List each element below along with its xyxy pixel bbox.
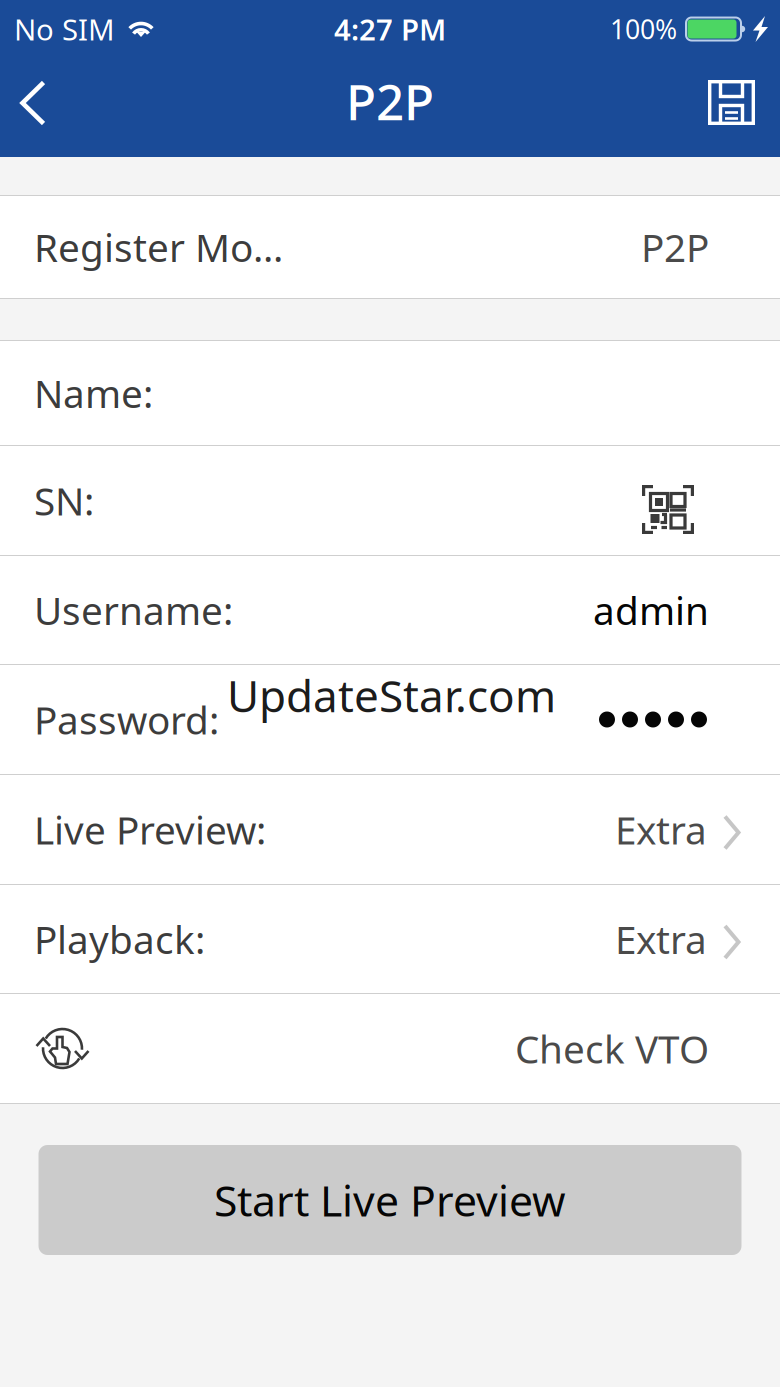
button[interactable]: Playback:: [0, 885, 780, 993]
staticText: SN:: [34, 475, 94, 526]
staticText: 4:27 PM: [334, 9, 446, 48]
staticText: P2P: [346, 68, 434, 134]
staticText: P2P: [641, 221, 709, 273]
staticText: Username:: [34, 584, 233, 636]
button[interactable]: Scan serial number: [642, 467, 694, 534]
button[interactable]: Save: [701, 58, 762, 157]
staticText: Password:: [34, 694, 219, 745]
staticText: No SIM: [14, 9, 115, 48]
staticText: Name:: [34, 367, 153, 419]
staticText: admin: [593, 584, 709, 636]
button[interactable]: Register Mo...: [0, 196, 780, 298]
button[interactable]: Live Preview:: [0, 775, 780, 884]
staticText: Register Mo...: [34, 221, 283, 273]
staticText: Start Live Preview: [214, 1172, 566, 1228]
staticText: Extra: [615, 804, 707, 855]
button[interactable]: Back: [5, 58, 61, 157]
staticText: Live Preview:: [34, 804, 266, 855]
button[interactable]: Start Live Preview: [38, 1145, 741, 1255]
button[interactable]: Check VTO: [0, 994, 780, 1103]
staticText: Extra: [615, 913, 707, 965]
staticText: Check VTO: [515, 1023, 709, 1074]
staticText: Playback:: [34, 913, 205, 965]
staticText: 100%: [610, 11, 677, 47]
staticText: UpdateStar.com: [227, 666, 556, 724]
